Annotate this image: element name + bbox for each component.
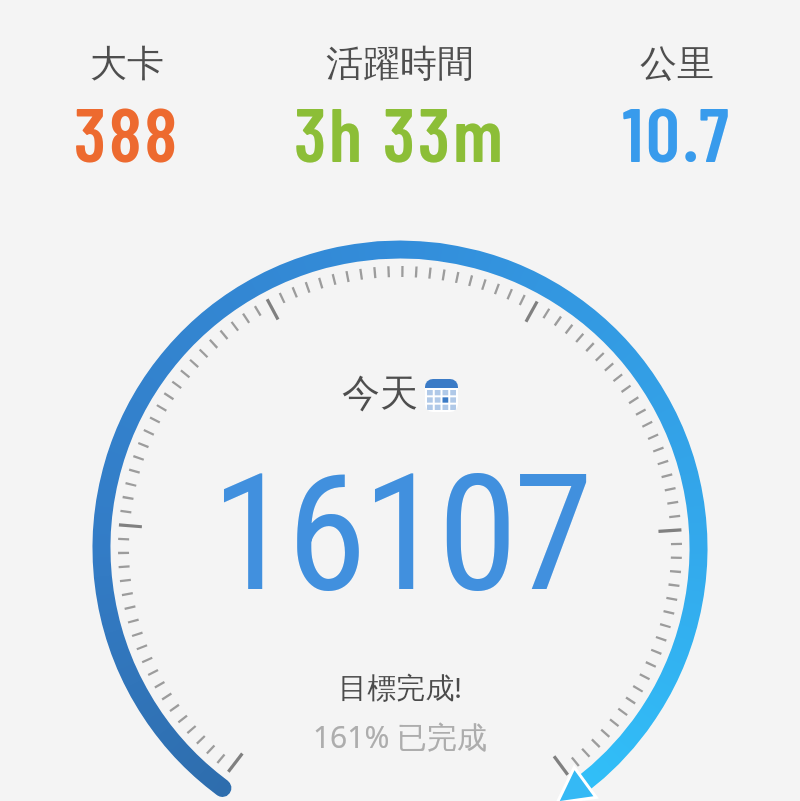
staticText: 3h 33m <box>290 87 510 177</box>
button[interactable]: 大卡 <box>17 40 237 170</box>
staticText: 活躍時間 <box>290 40 510 87</box>
staticText: 16107 <box>0 439 800 629</box>
staticText: 目標完成! <box>0 669 800 707</box>
staticText: 10.7 <box>567 87 787 177</box>
button[interactable]: 活躍時間 <box>290 40 510 170</box>
staticText: 388 <box>17 87 237 177</box>
staticText: 今天 <box>342 369 418 417</box>
button[interactable]: 今天 <box>300 369 500 417</box>
staticText: 公里 <box>567 40 787 87</box>
staticText: 161% 已完成 <box>0 716 800 757</box>
staticText: 大卡 <box>17 40 237 87</box>
button[interactable]: 公里 <box>567 40 787 170</box>
